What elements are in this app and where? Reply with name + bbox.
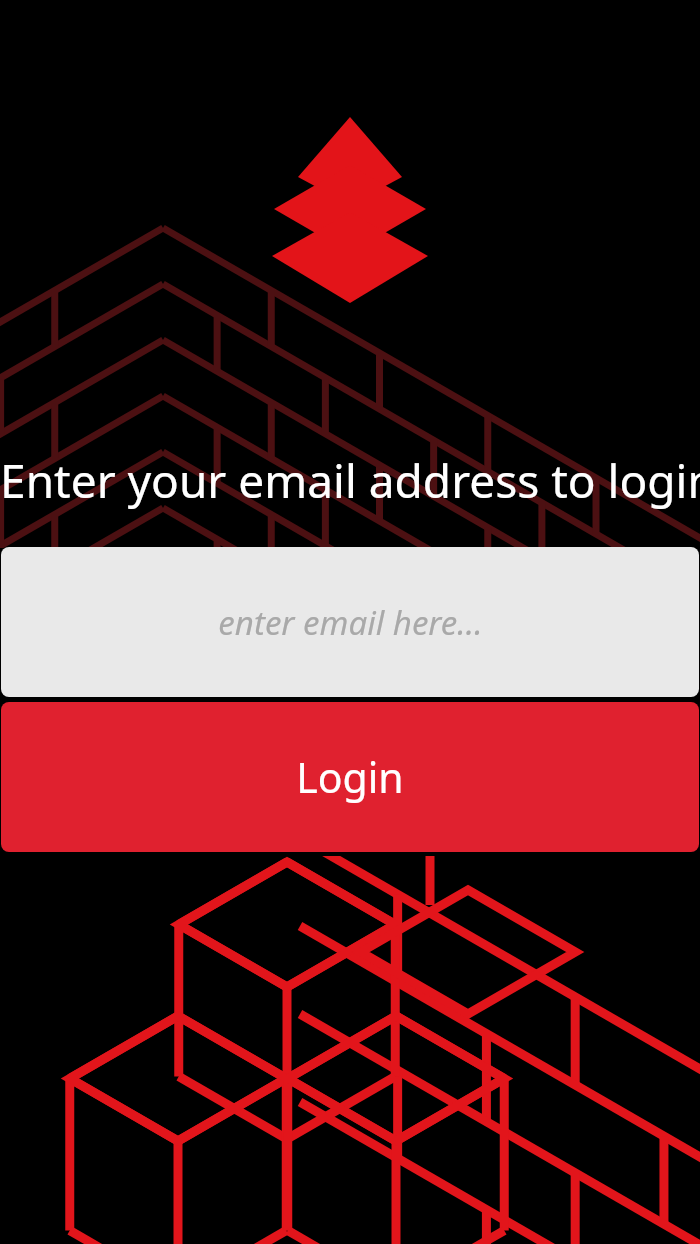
staticText: enter email here... bbox=[218, 600, 483, 645]
button[interactable]: Email address input field bbox=[1, 547, 699, 697]
staticText: Login bbox=[296, 749, 404, 805]
other: App logo bbox=[0, 0, 700, 1244]
button[interactable]: Login bbox=[1, 702, 699, 852]
staticText: Enter your email address to login bbox=[0, 449, 700, 512]
